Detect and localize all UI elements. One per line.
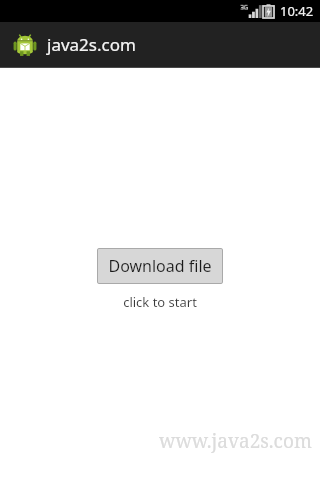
staticText: click to start — [123, 293, 197, 311]
staticText: www.java2s.com — [159, 428, 312, 454]
other: 3G signal strength — [240, 4, 258, 18]
staticText: Download file — [108, 255, 212, 277]
staticText: java2s.com — [47, 33, 136, 56]
button[interactable]: Download file — [97, 248, 223, 284]
other: Battery charging — [263, 4, 274, 18]
staticText: 10:42 — [280, 2, 314, 20]
button[interactable]: java2s.com — [0, 22, 320, 67]
